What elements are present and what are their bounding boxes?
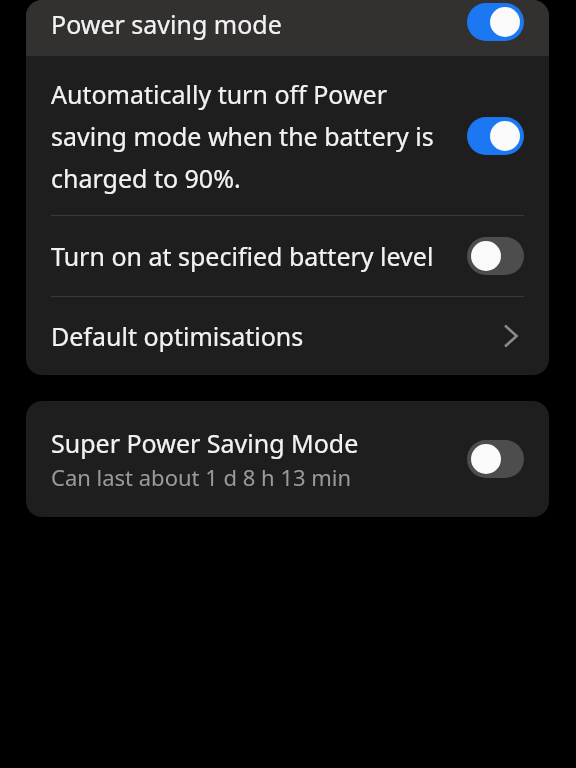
button[interactable]: Automatically turn off Power saving mode… bbox=[26, 56, 549, 215]
button[interactable]: Automatically turn off Power saving mode bbox=[467, 117, 524, 155]
staticText: Power saving mode bbox=[51, 7, 467, 41]
button[interactable]: Power saving mode bbox=[26, 0, 549, 56]
button[interactable]: Super Power Saving Mode bbox=[26, 401, 549, 517]
staticText: Automatically turn off Power saving mode… bbox=[51, 77, 455, 195]
staticText: Default optimisations bbox=[51, 319, 501, 353]
button[interactable]: Super Power Saving Mode bbox=[467, 440, 524, 478]
staticText: Can last about 1 d 8 h 13 min bbox=[51, 462, 352, 492]
staticText: Super Power Saving Mode bbox=[51, 426, 359, 460]
button[interactable]: Turn on at specified battery level bbox=[26, 216, 549, 296]
button[interactable]: Power saving mode bbox=[467, 3, 524, 41]
button[interactable]: Default optimisations bbox=[26, 297, 549, 375]
staticText: Turn on at specified battery level bbox=[51, 239, 467, 273]
button[interactable]: Turn on at specified battery level bbox=[467, 237, 524, 275]
other: Open default optimisations bbox=[501, 321, 521, 351]
